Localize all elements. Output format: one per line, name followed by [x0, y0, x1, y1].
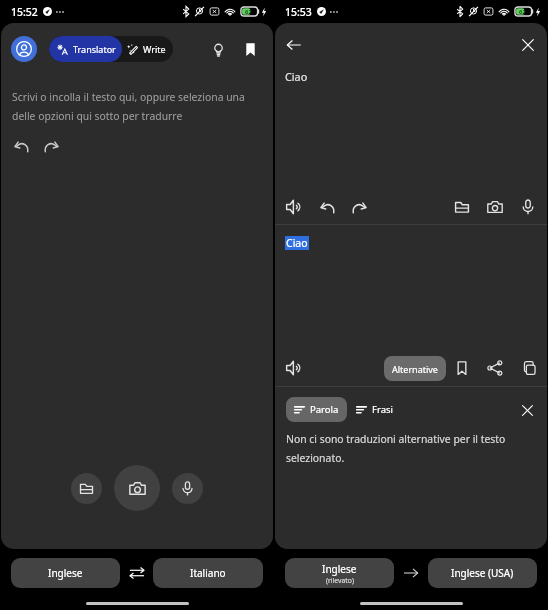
staticText: 62 [245, 8, 252, 16]
button[interactable]: Save [450, 356, 474, 380]
button[interactable]: Inglese [11, 558, 120, 588]
staticText: Inglese [322, 562, 357, 576]
button[interactable]: Inglese (USA) [428, 558, 537, 588]
button[interactable]: Listen [282, 195, 306, 219]
button[interactable]: Saved [238, 37, 262, 61]
button[interactable]: Camera [114, 465, 160, 511]
button[interactable]: Undo [10, 135, 32, 157]
staticText: Ciao [285, 69, 308, 84]
button[interactable]: Redo [41, 135, 63, 157]
button[interactable]: Close [516, 33, 540, 57]
button[interactable]: Translate direction [394, 558, 428, 588]
button[interactable]: Parola [286, 397, 347, 422]
button[interactable]: Italiano [153, 558, 263, 588]
button[interactable]: Microphone [516, 195, 540, 219]
button[interactable]: Microphone [172, 473, 203, 504]
staticText: Parola [310, 403, 339, 416]
button[interactable]: Back [282, 33, 306, 57]
button[interactable]: Documents [450, 195, 474, 219]
staticText: Ciao [286, 236, 308, 250]
button[interactable]: Close panel [515, 398, 539, 422]
button[interactable]: Documents [71, 473, 102, 504]
button[interactable]: Alternative [384, 356, 446, 381]
staticText: 62 [519, 8, 526, 16]
button[interactable]: Swap languages [120, 558, 153, 588]
button[interactable]: Camera [483, 195, 507, 219]
button[interactable]: Tips [206, 37, 230, 61]
button[interactable]: Account [11, 36, 37, 62]
staticText: 15:53 [285, 5, 312, 19]
button[interactable]: Listen [282, 356, 306, 380]
staticText: Alternative [392, 363, 438, 375]
staticText: Inglese (USA) [451, 566, 514, 580]
staticText: Italiano [190, 566, 226, 580]
button[interactable]: Copy [516, 356, 540, 380]
staticText: Non ci sono traduzioni alternative per i… [286, 432, 511, 465]
staticText: (rilevato) [326, 576, 354, 585]
staticText: Translator [73, 43, 116, 55]
button[interactable]: Redo [348, 195, 372, 219]
button[interactable]: Undo [315, 195, 339, 219]
button[interactable]: Write [122, 36, 173, 62]
staticText: Inglese [48, 566, 83, 580]
staticText: 15:52 [11, 5, 38, 19]
button[interactable]: Translator [49, 36, 122, 62]
staticText: Write [143, 43, 166, 55]
staticText: Frasi [372, 403, 393, 416]
button[interactable]: Inglese [285, 558, 394, 588]
button[interactable]: Frasi [356, 397, 393, 422]
button[interactable]: Share [483, 356, 507, 380]
staticText: Scrivi o incolla il testo qui, oppure se… [12, 90, 251, 123]
